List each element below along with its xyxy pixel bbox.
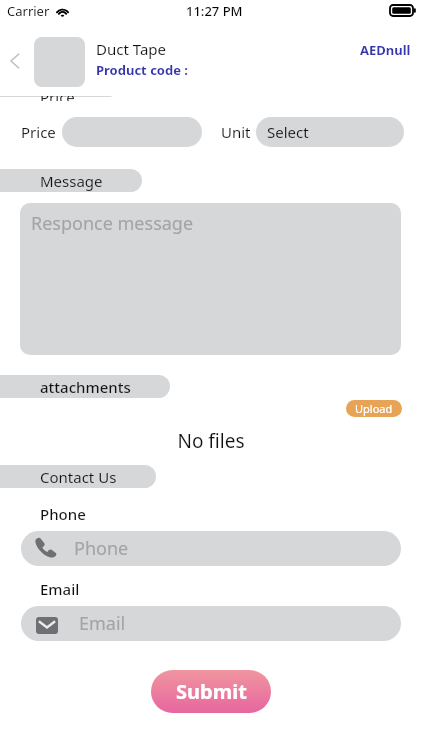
button[interactable] [0,96,116,97]
staticText: Unit [221,122,251,142]
button[interactable]: Upload [346,400,402,417]
staticText: Duct Tape [96,39,166,59]
staticText: 11:27 PM [186,2,243,20]
button[interactable]: Phone [21,531,401,566]
staticText: Price [40,96,75,101]
staticText: Submit [176,678,247,705]
staticText: Price [21,122,56,142]
button[interactable]: Responce message [20,203,401,355]
button[interactable]: Product code : [96,61,188,79]
staticText: Contact Us [40,467,117,487]
staticText: Phone [40,504,86,524]
button[interactable] [62,117,202,147]
button[interactable]: Contact Us [0,465,156,488]
button[interactable]: attachments [0,375,170,398]
staticText: attachments [40,377,131,397]
staticText: Carrier [7,2,50,20]
staticText: Email [40,579,80,599]
button[interactable]: Submit [151,670,271,713]
staticText: Phone [74,536,129,561]
staticText: Responce message [31,211,194,236]
button[interactable]: Message [0,169,142,192]
staticText: Select [267,122,309,142]
staticText: No files [0,428,422,454]
staticText: Email [79,611,126,636]
button[interactable]: Email [21,606,401,641]
staticText: AEDnull [360,41,411,59]
staticText: Message [40,171,103,191]
button[interactable]: Select [256,117,404,147]
staticText: Upload [355,401,393,416]
button[interactable]: Back [0,46,30,76]
